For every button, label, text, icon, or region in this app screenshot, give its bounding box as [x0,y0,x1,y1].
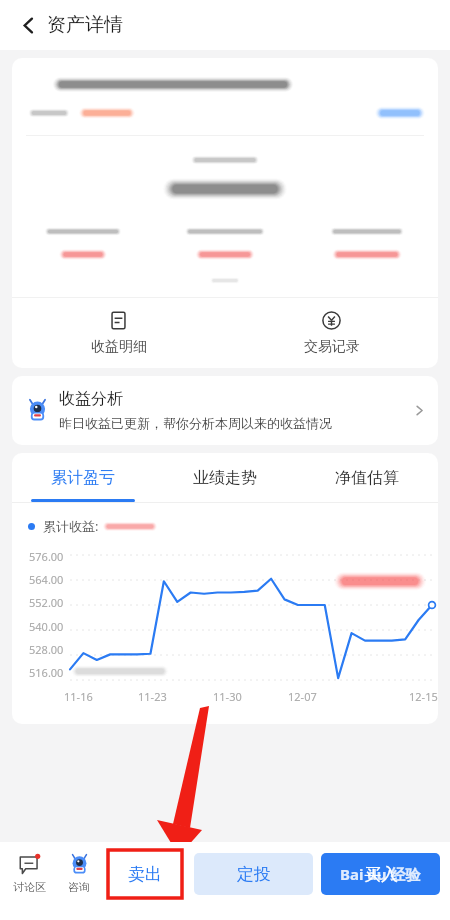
staticText: 昨日收益已更新，帮你分析本周以来的收益情况 [59,415,332,431]
staticText: 卖出 [128,864,162,885]
button[interactable]: 收益分析 [12,376,438,445]
staticText: 540.00 [29,619,64,634]
staticText: 累计盈亏 [51,468,115,488]
staticText: 516.00 [29,665,64,680]
staticText: 资产详情 [47,13,123,37]
staticText: 564.00 [29,572,64,587]
button[interactable]: 买入 [321,853,440,895]
staticText: 552.00 [29,595,64,610]
button[interactable] [376,104,424,122]
other: More [413,404,426,417]
button[interactable]: 累计盈亏 [12,453,154,503]
button[interactable]: Back [8,5,48,45]
staticText: 528.00 [29,642,64,657]
staticText: 12-07 [288,689,317,704]
staticText: 讨论区 [13,880,46,894]
button[interactable]: 收益明细 [12,298,225,368]
button[interactable]: 定投 [194,853,313,895]
staticText: 11-30 [213,689,242,704]
staticText: 11-16 [64,689,93,704]
staticText: 累计收益: [43,517,99,535]
staticText: 净值估算 [335,468,399,488]
staticText: 买入 [364,864,398,885]
staticText: 定投 [237,864,271,885]
button[interactable]: 交易记录 [225,298,438,368]
button[interactable]: 业绩走势 [154,453,296,503]
staticText: 576.00 [29,549,64,564]
button[interactable]: 讨论区 [4,854,54,894]
button[interactable]: 咨询 [54,854,104,894]
staticText: 收益明细 [91,338,147,356]
staticText: 11-23 [138,689,167,704]
staticText: Bai du 经验 [340,864,421,884]
staticText: 12-15 [409,689,438,704]
button[interactable]: 净值估算 [296,453,438,503]
staticText: 收益分析 [59,389,123,409]
button[interactable]: 卖出 [108,850,182,898]
staticText: 业绩走势 [193,468,257,488]
staticText: 交易记录 [304,338,360,356]
staticText: 咨询 [68,880,90,894]
